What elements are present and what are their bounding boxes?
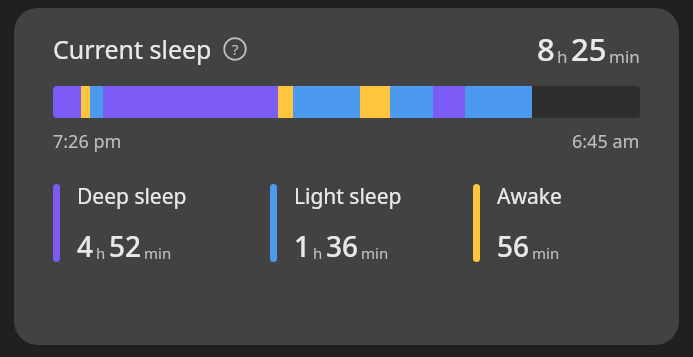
staticText: Current sleep: [53, 32, 212, 66]
button[interactable]: Light sleep: [270, 182, 473, 265]
staticText: 6:45 am: [572, 129, 640, 154]
staticText: min: [144, 243, 172, 263]
staticText: 4: [77, 227, 94, 265]
staticText: Awake: [497, 182, 562, 211]
staticText: ?: [232, 39, 239, 59]
staticText: 56: [497, 227, 530, 265]
staticText: min: [532, 243, 560, 263]
staticText: h: [96, 243, 106, 263]
button[interactable]: Current sleep: [14, 8, 679, 345]
button[interactable]: Awake: [473, 182, 640, 265]
staticText: 52: [109, 227, 142, 265]
staticText: h: [313, 243, 323, 263]
button[interactable]: Deep sleep: [53, 182, 270, 265]
staticText: 8: [537, 28, 555, 70]
staticText: min: [361, 243, 389, 263]
staticText: min: [609, 45, 640, 68]
staticText: 36: [326, 227, 359, 265]
staticText: 7:26 pm: [53, 129, 122, 154]
staticText: 25: [571, 28, 607, 70]
staticText: h: [557, 45, 568, 68]
button[interactable]: Help about current sleep: [223, 37, 247, 61]
staticText: 1: [294, 227, 311, 265]
staticText: Deep sleep: [77, 182, 187, 211]
staticText: Light sleep: [294, 182, 402, 211]
